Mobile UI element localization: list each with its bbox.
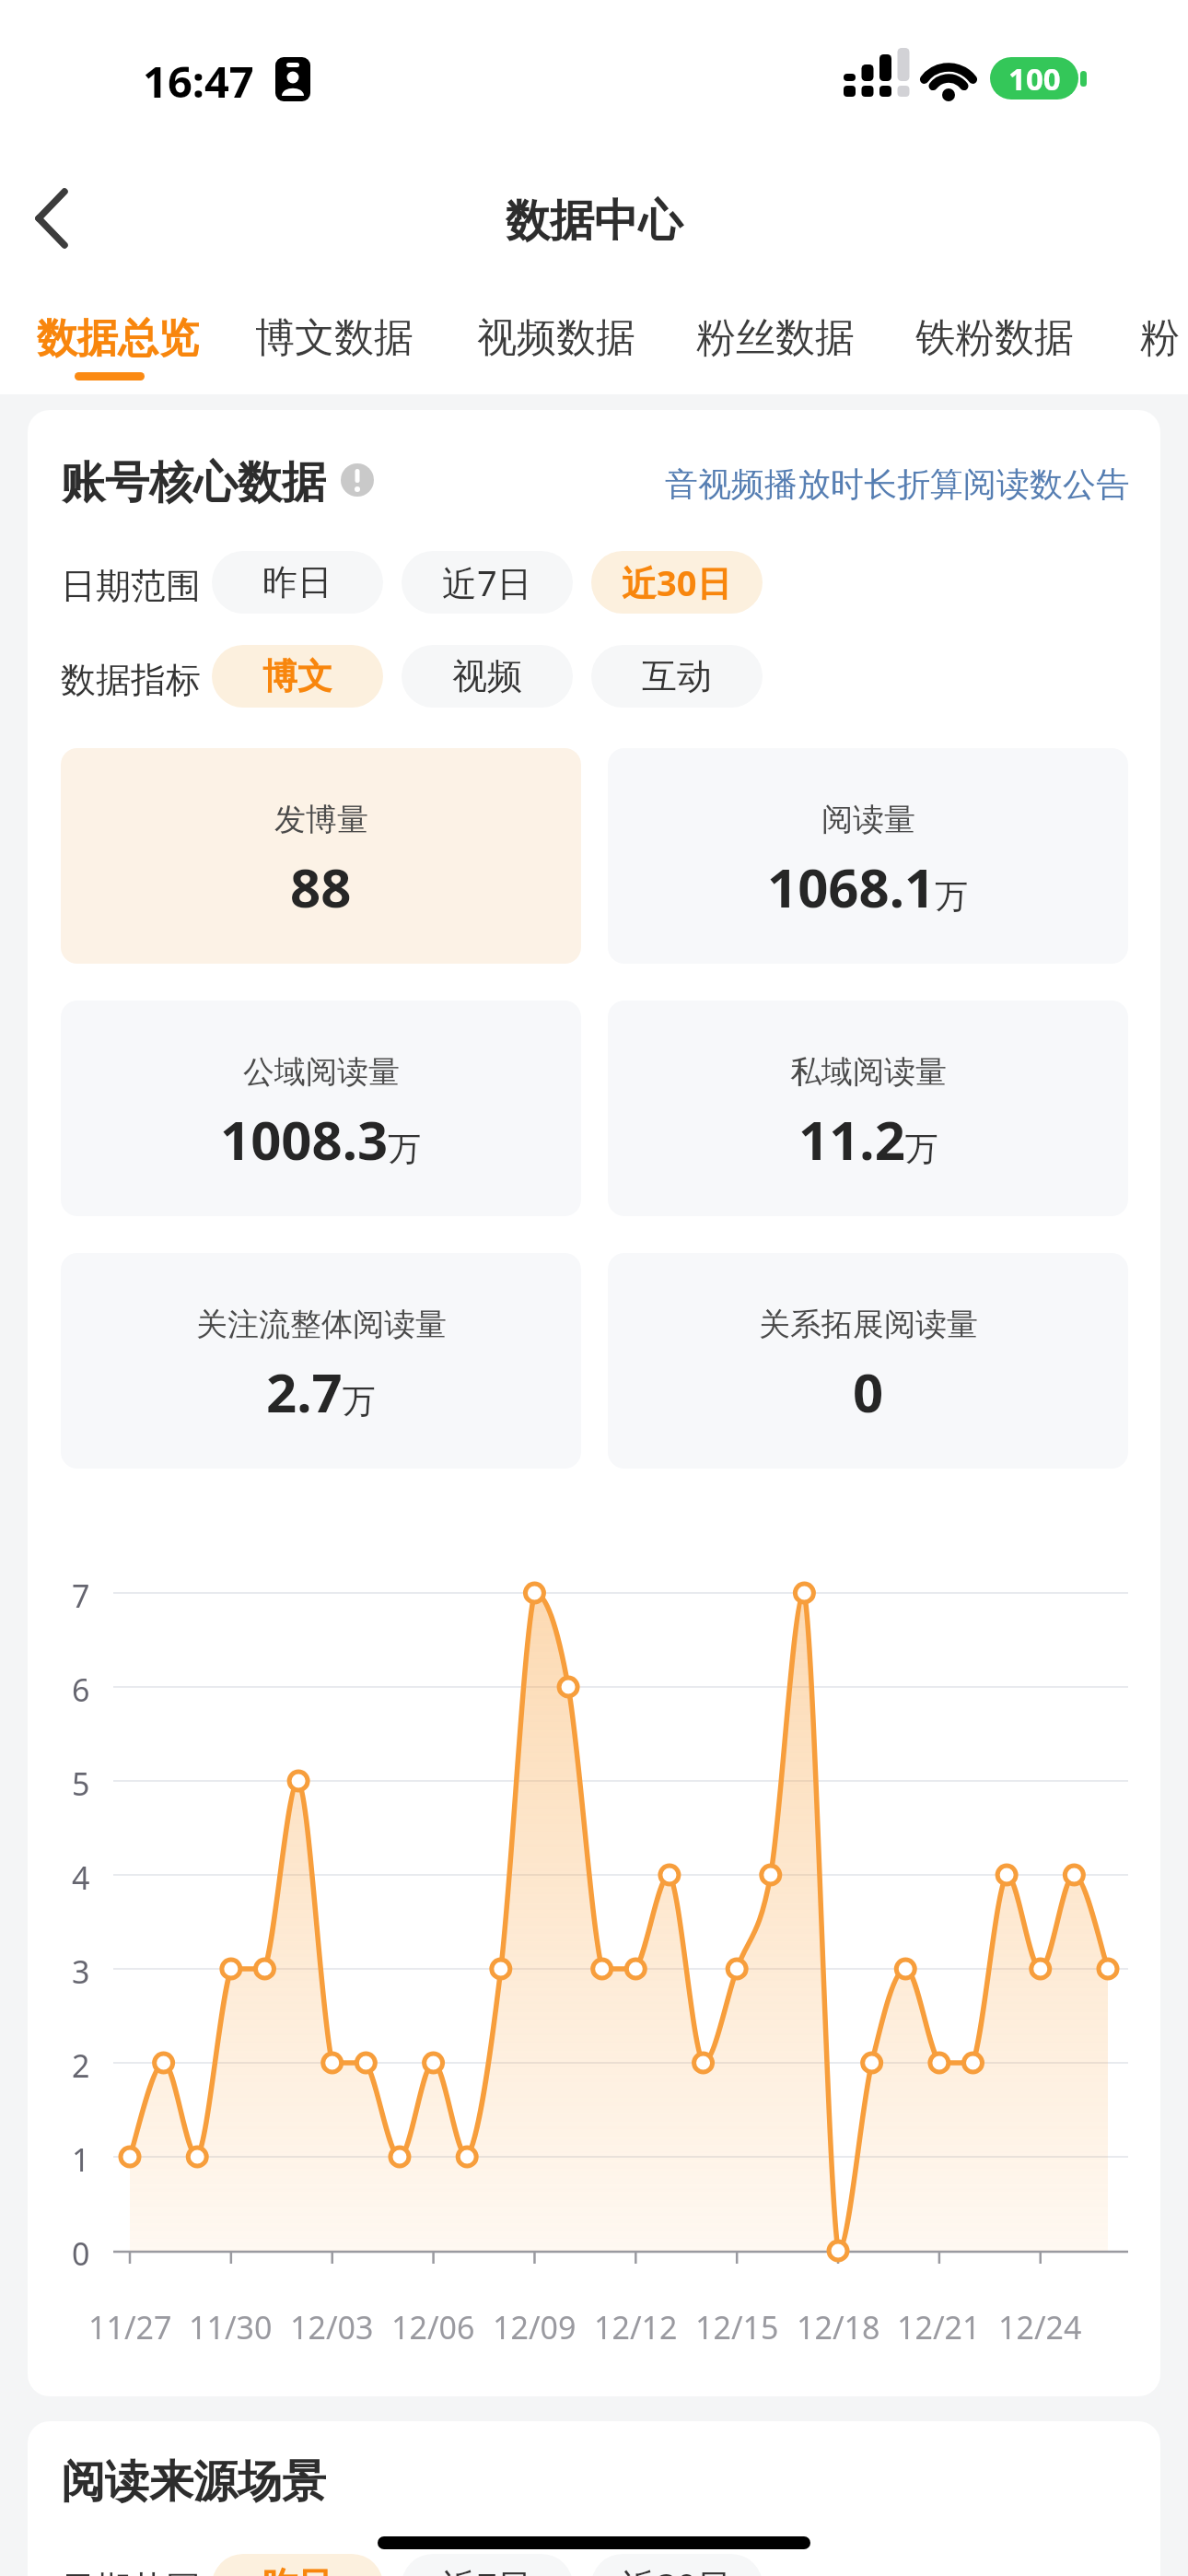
staticText: 阅读来源场景 (61, 2454, 326, 2504)
staticText: 3 (72, 1950, 90, 1987)
staticText: 12/15 (695, 2306, 779, 2343)
staticText: 1008.3万 (220, 1103, 422, 1176)
staticText: 12/18 (797, 2306, 880, 2343)
staticText: 1068.1万 (767, 850, 969, 923)
staticText: 88 (290, 850, 352, 923)
button[interactable]: 近7日 (402, 2554, 573, 2576)
staticText: 11/27 (88, 2306, 172, 2343)
staticText: 11/30 (189, 2306, 273, 2343)
staticText: 数据指标 (61, 658, 201, 698)
button[interactable]: 视频数据 (475, 313, 637, 361)
button[interactable] (18, 180, 101, 263)
button[interactable]: 公域阅读量 (61, 1001, 581, 1216)
staticText: 视频数据 (477, 313, 635, 361)
staticText: 铁粉数据 (915, 313, 1074, 361)
button[interactable]: 粉丝 (1140, 313, 1188, 361)
staticText: 公域阅读量 (243, 1052, 400, 1089)
staticText: 11.2万 (798, 1103, 938, 1176)
button[interactable]: 数据总览 (33, 313, 203, 361)
staticText: 近7日 (442, 558, 532, 606)
staticText: 16:47 (143, 52, 254, 103)
staticText: 博文数据 (255, 313, 413, 361)
staticText: 7 (72, 1575, 90, 1611)
staticText: 近30日 (622, 558, 732, 606)
staticText: 账号核心数据 (61, 455, 326, 505)
staticText: 关注流整体阅读量 (196, 1305, 447, 1341)
button[interactable]: 铁粉数据 (914, 313, 1076, 361)
staticText: 阅读量 (821, 800, 915, 837)
staticText: 1 (72, 2138, 90, 2175)
staticText: 12/12 (594, 2306, 678, 2343)
button[interactable]: 博文数据 (253, 313, 415, 361)
button[interactable]: 近30日 (591, 551, 763, 614)
staticText: 数据中心 (506, 193, 682, 249)
staticText: 近30日 (622, 2561, 732, 2576)
staticText: 数据总览 (37, 313, 199, 361)
button[interactable]: 视频 (402, 645, 573, 708)
button[interactable]: 私域阅读量 (608, 1001, 1128, 1216)
staticText: 昨日 (262, 2563, 332, 2576)
staticText: 日期范围 (61, 564, 201, 604)
button[interactable]: 近30日 (591, 2554, 763, 2576)
staticText: 2 (72, 2044, 90, 2081)
staticText: 12/24 (998, 2306, 1082, 2343)
staticText: 12/03 (290, 2306, 374, 2343)
button[interactable]: 关系拓展阅读量 (608, 1253, 1128, 1469)
staticText: 博文 (262, 654, 332, 698)
button[interactable]: 阅读量 (608, 748, 1128, 964)
staticText: 昨日 (262, 560, 332, 604)
staticText: 4 (72, 1856, 90, 1893)
button[interactable]: 粉丝数据 (694, 313, 856, 361)
staticText: 0 (72, 2232, 90, 2269)
staticText: 2.7万 (266, 1355, 376, 1428)
staticText: 粉丝 (1140, 313, 1188, 361)
staticText: 6 (72, 1669, 90, 1705)
staticText: 互动 (642, 654, 712, 698)
staticText: 12/09 (493, 2306, 577, 2343)
staticText: 12/21 (897, 2306, 981, 2343)
button[interactable]: 互动 (591, 645, 763, 708)
staticText: 近7日 (442, 2561, 532, 2576)
button[interactable]: 音视频播放时长折算阅读数公告 (659, 463, 1129, 500)
staticText: 12/06 (391, 2306, 475, 2343)
staticText: 粉丝数据 (696, 313, 855, 361)
staticText: 发博量 (274, 800, 368, 837)
staticText: 私域阅读量 (790, 1052, 947, 1089)
button[interactable]: 昨日 (212, 551, 383, 614)
button[interactable]: 近7日 (402, 551, 573, 614)
button[interactable]: 发博量 (61, 748, 581, 964)
button[interactable]: 关注流整体阅读量 (61, 1253, 581, 1469)
staticText: 音视频播放时长折算阅读数公告 (665, 463, 1129, 500)
staticText: 视频 (452, 654, 522, 698)
staticText: 100 (1008, 58, 1061, 100)
staticText: 关系拓展阅读量 (759, 1305, 978, 1341)
staticText: 5 (72, 1762, 90, 1799)
staticText: 日期范围 (61, 2567, 201, 2576)
staticText: 0 (853, 1355, 884, 1428)
button[interactable]: 昨日 (212, 2554, 383, 2576)
button[interactable]: 博文 (212, 645, 383, 708)
